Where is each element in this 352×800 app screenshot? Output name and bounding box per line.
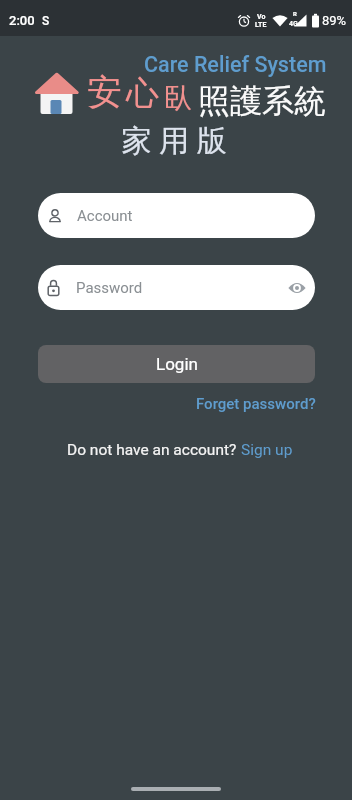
staticText: 4G bbox=[289, 20, 298, 28]
staticText: 2:00 bbox=[9, 13, 35, 28]
staticText: S bbox=[42, 14, 50, 28]
staticText: 安 bbox=[87, 70, 122, 114]
button[interactable]: Account bbox=[38, 193, 315, 238]
staticText: LTE bbox=[255, 21, 267, 29]
staticText: Do not have an account? bbox=[67, 441, 241, 459]
staticText: 89% bbox=[322, 13, 347, 28]
button[interactable]: Forget password? bbox=[196, 395, 316, 413]
staticText: R bbox=[293, 10, 297, 17]
staticText: Password bbox=[76, 279, 143, 297]
staticText: Care Relief System bbox=[144, 52, 327, 77]
button[interactable]: Sign up bbox=[241, 441, 293, 459]
button[interactable]: Login bbox=[38, 345, 315, 383]
staticText: Login bbox=[156, 354, 198, 374]
staticText: Vo bbox=[257, 13, 266, 21]
staticText: 家 用 版 bbox=[0, 119, 350, 160]
button[interactable]: Password bbox=[38, 265, 315, 310]
staticText: Account bbox=[77, 207, 133, 225]
staticText: 照護系統 bbox=[198, 81, 326, 121]
staticText: 心 bbox=[126, 72, 159, 114]
staticText: 臥 bbox=[164, 80, 192, 115]
